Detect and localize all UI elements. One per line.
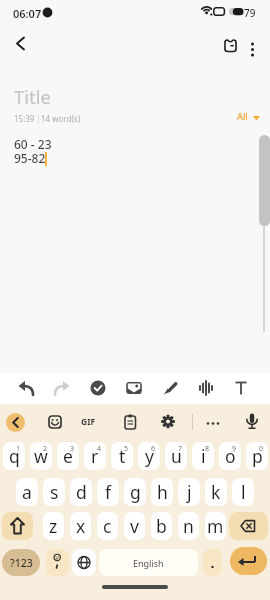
staticText: s <box>50 480 59 504</box>
button[interactable]: u <box>165 442 187 470</box>
button[interactable] <box>230 547 267 575</box>
button[interactable] <box>244 36 262 60</box>
staticText: m <box>207 514 224 538</box>
staticText: 1 <box>16 444 21 454</box>
staticText: 5 <box>124 444 129 454</box>
staticText: | <box>36 113 41 124</box>
staticText: k <box>211 480 221 504</box>
staticText: z <box>49 514 58 538</box>
button[interactable]: o <box>219 442 241 470</box>
button[interactable] <box>203 549 222 576</box>
button[interactable]: z <box>43 512 64 540</box>
staticText: y <box>145 444 154 468</box>
button[interactable] <box>120 413 140 433</box>
staticText: i <box>201 444 206 468</box>
button[interactable]: p <box>246 442 268 470</box>
staticText: f <box>105 480 112 504</box>
button[interactable] <box>226 373 256 404</box>
staticText: l <box>241 480 246 504</box>
button[interactable]: GIF <box>78 414 102 430</box>
staticText: 7 <box>178 444 183 454</box>
staticText: a <box>22 480 32 504</box>
button[interactable]: All <box>233 108 265 124</box>
staticText: English <box>133 557 164 569</box>
staticText: 8 <box>205 444 210 454</box>
button[interactable] <box>46 549 69 576</box>
button[interactable] <box>2 512 33 540</box>
button[interactable] <box>47 373 77 404</box>
staticText: d <box>76 480 87 504</box>
button[interactable]: l <box>232 478 254 506</box>
staticText: 9 <box>232 444 237 454</box>
button[interactable]: g <box>124 478 146 506</box>
staticText: 6 <box>151 444 156 454</box>
button[interactable]: m <box>205 512 226 540</box>
button[interactable]: English <box>99 549 198 576</box>
staticText: c <box>103 514 112 538</box>
staticText: e <box>63 444 73 468</box>
staticText: b <box>156 514 167 538</box>
button[interactable]: r <box>84 442 106 470</box>
staticText: ?123 <box>10 556 33 570</box>
button[interactable] <box>242 412 262 432</box>
staticText: p <box>252 444 263 468</box>
button[interactable] <box>8 32 34 56</box>
button[interactable] <box>191 373 221 404</box>
button[interactable]: t <box>111 442 133 470</box>
staticText: v <box>130 514 139 538</box>
button[interactable] <box>45 415 65 435</box>
staticText: o <box>225 444 236 468</box>
button[interactable]: b <box>151 512 172 540</box>
button[interactable]: x <box>70 512 91 540</box>
staticText: u <box>171 444 182 468</box>
button[interactable] <box>203 413 223 433</box>
button[interactable]: w <box>30 442 52 470</box>
staticText: h <box>157 480 168 504</box>
button[interactable]: f <box>97 478 119 506</box>
button[interactable]: j <box>178 478 200 506</box>
button[interactable] <box>6 413 25 432</box>
staticText: 4 <box>97 444 102 454</box>
staticText: GIF <box>81 416 96 428</box>
button[interactable] <box>158 413 178 433</box>
staticText: t <box>119 444 126 468</box>
button[interactable]: y <box>138 442 160 470</box>
staticText: r <box>91 444 99 468</box>
staticText: 06:07 <box>13 6 42 21</box>
staticText: 0 <box>259 444 264 454</box>
button[interactable]: a <box>16 478 38 506</box>
staticText: n <box>183 514 194 538</box>
staticText: 79 <box>244 6 256 20</box>
button[interactable]: c <box>97 512 118 540</box>
staticText: 95-82 <box>14 150 46 166</box>
staticText: j <box>187 480 192 504</box>
staticText: 14 word(s) <box>41 113 81 124</box>
staticText: Title <box>14 84 51 109</box>
staticText: 60 - 23 <box>14 136 52 152</box>
button[interactable] <box>83 373 113 404</box>
button[interactable]: ?123 <box>2 549 40 576</box>
button[interactable] <box>72 549 96 576</box>
staticText: All <box>237 110 248 122</box>
button[interactable]: k <box>205 478 227 506</box>
button[interactable] <box>155 373 185 404</box>
button[interactable] <box>119 373 149 404</box>
staticText: w <box>34 444 48 468</box>
button[interactable]: d <box>70 478 92 506</box>
button[interactable]: e <box>57 442 79 470</box>
button[interactable]: s <box>43 478 65 506</box>
button[interactable] <box>220 35 242 57</box>
staticText: g <box>130 480 141 504</box>
button[interactable] <box>229 512 268 540</box>
button[interactable]: h <box>151 478 173 506</box>
staticText: 15:39 <box>14 113 35 124</box>
staticText: x <box>76 514 86 538</box>
button[interactable]: v <box>124 512 145 540</box>
staticText: q <box>9 444 20 468</box>
button[interactable] <box>11 373 41 404</box>
button[interactable]: i <box>192 442 214 470</box>
staticText: 2 <box>43 444 48 454</box>
button[interactable]: q <box>3 442 25 470</box>
button[interactable]: n <box>178 512 199 540</box>
staticText: 3 <box>70 444 75 454</box>
